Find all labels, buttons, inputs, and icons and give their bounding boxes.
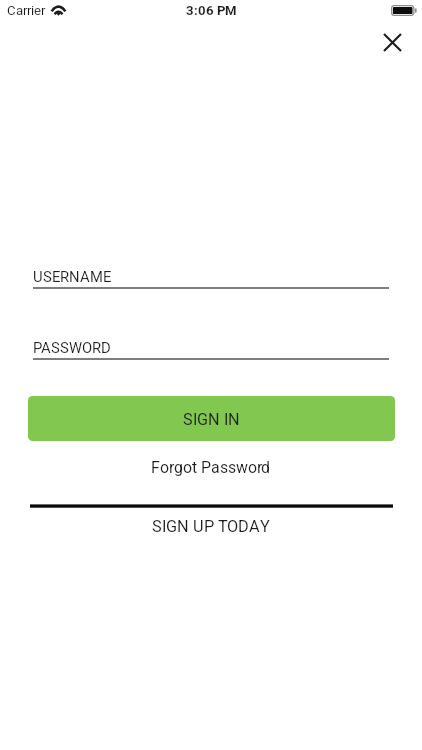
staticText: SIGN IN bbox=[183, 410, 240, 429]
staticText: Carrier bbox=[7, 3, 45, 18]
button[interactable]: PASSWORD bbox=[33, 333, 389, 360]
staticText: 3:06 PM bbox=[186, 3, 237, 18]
staticText: USERNAME bbox=[33, 268, 112, 285]
button[interactable]: Forgot Password bbox=[0, 454, 422, 480]
button[interactable]: Close bbox=[376, 26, 409, 59]
button[interactable]: SIGN IN bbox=[28, 396, 395, 441]
staticText: Forgot Password bbox=[151, 458, 271, 477]
button[interactable]: USERNAME bbox=[33, 262, 389, 289]
button[interactable]: SIGN UP TODAY bbox=[0, 513, 422, 539]
staticText: PASSWORD bbox=[33, 339, 112, 356]
staticText: SIGN UP TODAY bbox=[152, 517, 270, 536]
